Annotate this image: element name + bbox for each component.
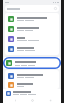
button[interactable] bbox=[3, 57, 61, 69]
button[interactable] bbox=[3, 89, 61, 97]
button[interactable]: Back bbox=[9, 97, 21, 103]
button[interactable]: Home bbox=[26, 97, 38, 103]
button[interactable] bbox=[5, 44, 59, 54]
button[interactable] bbox=[5, 34, 59, 44]
button[interactable] bbox=[5, 24, 59, 34]
button[interactable]: Account bbox=[5, 5, 59, 12]
other: Account bbox=[54, 7, 57, 10]
button[interactable] bbox=[5, 14, 59, 24]
button[interactable]: Recents bbox=[44, 97, 56, 103]
button[interactable] bbox=[5, 71, 59, 81]
button[interactable] bbox=[5, 81, 59, 88]
